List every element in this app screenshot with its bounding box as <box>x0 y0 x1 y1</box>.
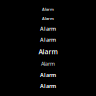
staticText: Alarm <box>40 82 56 89</box>
staticText: Alarm <box>41 60 55 67</box>
staticText: Alarm <box>40 25 56 32</box>
staticText: Alarm <box>38 47 57 56</box>
staticText: Alarm <box>40 36 56 43</box>
staticText: Alarm <box>40 71 56 78</box>
staticText: Alarm <box>42 16 54 21</box>
staticText: Alarm <box>42 7 54 12</box>
